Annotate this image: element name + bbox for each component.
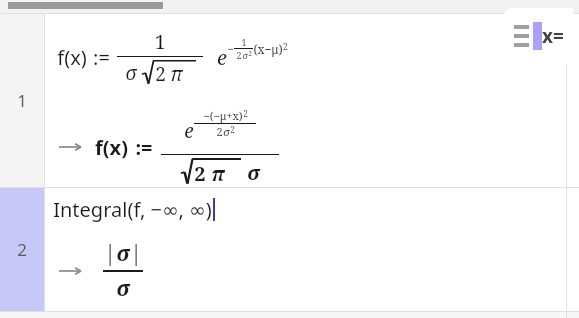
staticText: x= (542, 23, 564, 49)
staticText: σ (223, 124, 230, 139)
staticText: 2 (17, 238, 27, 261)
staticText: π (211, 160, 225, 186)
staticText: := (135, 134, 153, 161)
staticText: σ (247, 159, 260, 186)
staticText: f(x) (57, 44, 87, 71)
staticText: σ (116, 239, 130, 268)
staticText: π (170, 61, 183, 86)
staticText: 2 (155, 61, 166, 86)
staticText: 2 (248, 49, 252, 58)
button[interactable]: 2 (0, 188, 44, 311)
staticText: e (184, 118, 194, 144)
staticText: 2 (236, 49, 242, 61)
button[interactable]: 1 (0, 14, 44, 187)
staticText: 1 (241, 36, 247, 48)
staticText: σ (242, 49, 248, 61)
staticText: −(−μ+x) (203, 108, 243, 123)
staticText: 2 (243, 108, 248, 119)
staticText: 2 (230, 124, 235, 135)
staticText: 2 (216, 124, 223, 139)
staticText: (x−μ) (253, 41, 283, 57)
staticText: 1 (154, 28, 166, 55)
staticText: := (93, 44, 110, 71)
staticText: σ (116, 274, 130, 303)
staticText: − (227, 41, 234, 56)
staticText: 2 (194, 160, 206, 186)
staticText: 1 (17, 89, 27, 112)
staticText: 2 (283, 41, 288, 53)
staticText: f(x) (95, 134, 128, 161)
staticText: Integral(f, −∞, ∞) (53, 196, 212, 223)
staticText: | (130, 239, 142, 268)
button[interactable]: Open algebra keyboard (503, 8, 573, 64)
staticText: σ (125, 60, 137, 86)
staticText: | (104, 239, 116, 268)
button[interactable]: f(x) (45, 14, 579, 187)
staticText: e (217, 44, 227, 71)
button[interactable]: Integral(f, −∞, ∞) (45, 188, 579, 311)
